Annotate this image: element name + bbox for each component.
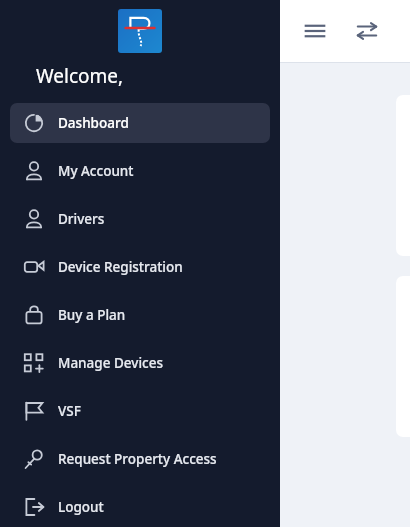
button[interactable]: Buy a Plan — [10, 295, 270, 335]
button[interactable]: Device Registration — [10, 247, 270, 287]
staticText: Device Registration — [58, 258, 183, 276]
button[interactable]: Drivers — [10, 199, 270, 239]
staticText: VSF — [58, 402, 81, 420]
staticText: Request Property Access — [58, 450, 217, 468]
button[interactable]: Dashboard — [10, 103, 270, 143]
button[interactable]: VSF — [10, 391, 270, 431]
button[interactable]: Menu — [298, 14, 332, 48]
staticText: Manage Devices — [58, 354, 163, 372]
staticText: My Account — [58, 162, 134, 180]
button[interactable]: Request Property Access — [10, 439, 270, 479]
staticText: Drivers — [58, 210, 105, 228]
staticText: Buy a Plan — [58, 306, 126, 324]
button[interactable]: Logout — [10, 487, 270, 527]
staticText: Welcome, — [36, 63, 124, 89]
button[interactable]: Manage Devices — [10, 343, 270, 383]
staticText: Dashboard — [58, 114, 129, 132]
button[interactable]: Switch — [350, 14, 384, 48]
button[interactable]: My Account — [10, 151, 270, 191]
button[interactable]: App logo — [118, 9, 162, 53]
staticText: Logout — [58, 498, 104, 516]
